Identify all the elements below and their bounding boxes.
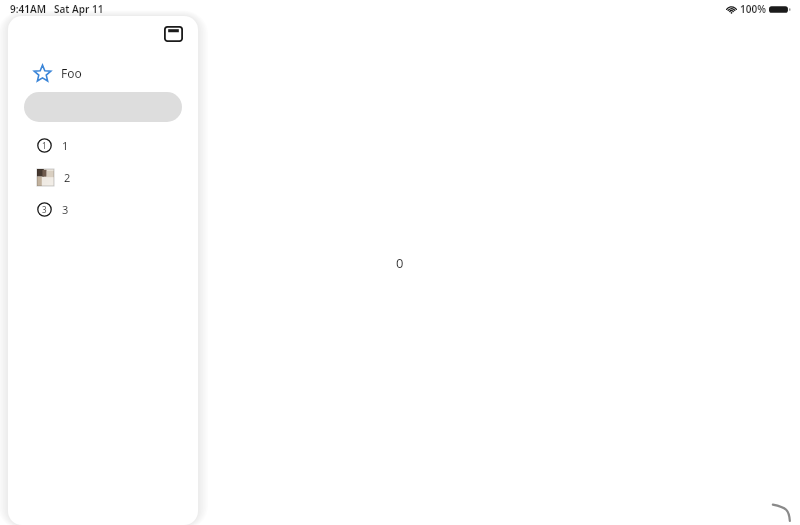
staticText: 1 xyxy=(62,138,69,153)
button[interactable]: Toggle sidebar xyxy=(160,21,186,47)
button[interactable]: 2 xyxy=(8,166,198,188)
staticText: 0 xyxy=(396,254,404,272)
staticText: Foo xyxy=(61,65,82,81)
button[interactable]: Foo xyxy=(8,60,198,86)
button[interactable]: 1 xyxy=(8,134,198,156)
staticText: 1 xyxy=(42,140,47,151)
staticText: 9:41AM xyxy=(10,2,46,16)
staticText: 2 xyxy=(64,170,71,185)
staticText: 100% xyxy=(740,2,766,16)
button[interactable]: Search xyxy=(24,92,182,122)
staticText: Sat Apr 11 xyxy=(54,2,104,16)
staticText: 3 xyxy=(62,202,69,217)
staticText: 3 xyxy=(42,204,47,215)
button[interactable]: 3 xyxy=(8,198,198,220)
